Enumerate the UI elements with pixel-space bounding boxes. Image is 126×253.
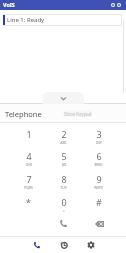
staticText: VoIS (3, 1, 15, 8)
button[interactable]: 5 (46, 146, 81, 169)
staticText: 5 (61, 150, 67, 162)
button[interactable]: Line 1: Ready (3, 14, 122, 26)
staticText: 6 (96, 150, 102, 162)
button[interactable]: 1 (11, 124, 46, 147)
staticText: * (26, 196, 31, 208)
button[interactable]: 8 (46, 169, 81, 192)
staticText: JKL (62, 162, 67, 166)
staticText: 7 (26, 173, 32, 185)
staticText: GHI (26, 162, 32, 166)
button[interactable]: 0 (46, 192, 81, 215)
button[interactable]: 7 (11, 169, 46, 192)
staticText: 2 (61, 128, 67, 140)
staticText: TUV (60, 185, 67, 189)
staticText: ABC (60, 140, 67, 144)
staticText: + (63, 208, 65, 212)
button[interactable]: Dialpad (23, 236, 50, 253)
staticText: Telephone (5, 109, 42, 119)
staticText: Show Keypad (64, 111, 92, 117)
staticText: 1 (26, 128, 32, 140)
staticText: 4 (26, 150, 32, 162)
button[interactable]: 2 (46, 124, 81, 147)
button[interactable]: 3 (81, 124, 116, 147)
button[interactable]: Call (46, 212, 81, 235)
button[interactable]: Collapse panel (43, 92, 84, 104)
button[interactable]: * (11, 192, 46, 215)
staticText: 8 (61, 173, 67, 185)
staticText: 9 (96, 173, 102, 185)
staticText: MNO (94, 162, 103, 166)
staticText: Line 1: Ready (7, 16, 45, 24)
staticText: 0 (61, 196, 67, 208)
staticText: WXYZ (94, 185, 103, 189)
button[interactable]: 4 (11, 146, 46, 169)
button[interactable]: 6 (81, 146, 116, 169)
button[interactable]: Settings (77, 236, 104, 253)
staticText: # (96, 196, 102, 208)
staticText: 3 (96, 128, 102, 140)
button[interactable]: Backspace (82, 212, 117, 235)
button[interactable]: 9 (81, 169, 116, 192)
button[interactable]: # (81, 192, 116, 215)
button[interactable]: Recents (50, 236, 77, 253)
button[interactable]: Show Keypad (63, 110, 92, 117)
staticText: PQRS (24, 185, 33, 189)
staticText: DEF (96, 140, 102, 144)
